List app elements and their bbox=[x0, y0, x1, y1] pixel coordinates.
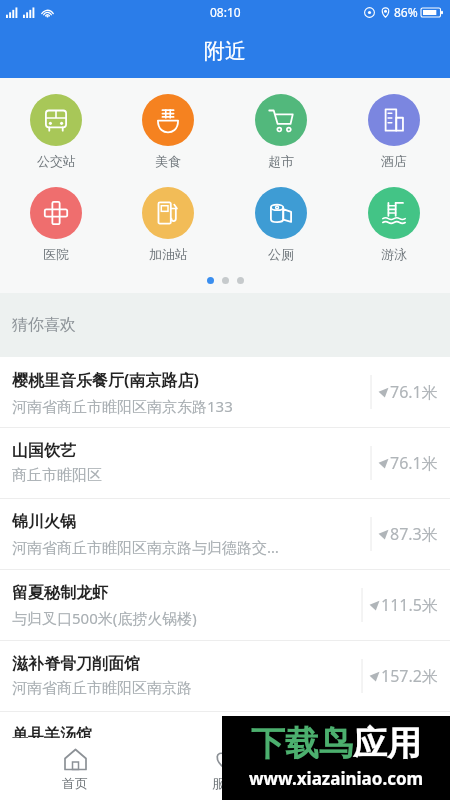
staticText: 157.2米 bbox=[381, 665, 438, 687]
staticText: 美食 bbox=[155, 153, 181, 169]
staticText: 河南省商丘市睢阳区南京路 bbox=[12, 679, 192, 698]
button[interactable]: 超市 bbox=[224, 92, 337, 171]
button[interactable]: 锦川火锅 bbox=[0, 499, 450, 569]
staticText: 酒店 bbox=[381, 153, 407, 169]
staticText: 公交站 bbox=[37, 153, 76, 169]
staticText: 180.0米 bbox=[381, 736, 438, 758]
button[interactable]: 单县羊汤馆 bbox=[0, 712, 450, 782]
staticText: 河南省商丘市睢阳区南京路与归德路交… bbox=[12, 537, 279, 557]
staticText: 河南省商丘市睢阳区南京东路133 bbox=[12, 396, 233, 416]
staticText: 08:10 bbox=[210, 4, 241, 20]
staticText: 锦川火锅 bbox=[12, 512, 76, 532]
button[interactable]: 酒店 bbox=[337, 92, 450, 171]
staticText: 加油站 bbox=[149, 246, 188, 262]
staticText: 与归叉口500米(底捞火锅楼) bbox=[12, 608, 197, 628]
staticText: 首页 bbox=[62, 775, 88, 791]
staticText: 猜你喜欢 bbox=[12, 315, 76, 335]
button[interactable]: 公交站 bbox=[0, 92, 112, 171]
button[interactable]: 医院 bbox=[0, 185, 112, 264]
button[interactable]: 加油站 bbox=[112, 185, 224, 264]
button[interactable]: 游泳 bbox=[337, 185, 450, 264]
button[interactable]: 服务 bbox=[150, 738, 300, 800]
staticText: www.xiazainiao.com bbox=[249, 767, 424, 790]
staticText: 医院 bbox=[43, 246, 69, 262]
button[interactable]: 樱桃里音乐餐厅(南京路店) bbox=[0, 357, 450, 427]
other: 首页 bbox=[63, 747, 88, 772]
button[interactable]: 公厕 bbox=[224, 185, 337, 264]
button[interactable]: 留夏秘制龙虾 bbox=[0, 570, 450, 640]
staticText: 111.5米 bbox=[381, 594, 438, 616]
button[interactable]: 滋补脊骨刀削面馆 bbox=[0, 641, 450, 711]
staticText: 留夏秘制龙虾 bbox=[12, 583, 108, 603]
staticText: 公厕 bbox=[268, 246, 294, 262]
button[interactable]: 美食 bbox=[112, 92, 224, 171]
button[interactable]: 山国饮艺 bbox=[0, 428, 450, 498]
staticText: 滋补脊骨刀削面馆 bbox=[12, 654, 140, 674]
staticText: 河南省商丘市睢阳区睢阳… bbox=[12, 750, 189, 770]
staticText: 服务 bbox=[212, 775, 238, 791]
staticText: 87.3米 bbox=[390, 523, 438, 545]
staticText: 下载鸟 bbox=[251, 722, 353, 765]
staticText: 86% bbox=[394, 4, 418, 20]
other: 服务 bbox=[213, 747, 238, 772]
staticText: 樱桃里音乐餐厅(南京路店) bbox=[12, 369, 199, 391]
staticText: 76.1米 bbox=[390, 381, 438, 403]
staticText: 超市 bbox=[268, 153, 294, 169]
staticText: 单县羊汤馆 bbox=[12, 725, 92, 745]
staticText: 附近 bbox=[204, 38, 246, 64]
staticText: 应用 bbox=[353, 722, 421, 765]
staticText: 商丘市睢阳区 bbox=[12, 466, 102, 485]
staticText: 山国饮艺 bbox=[12, 441, 76, 461]
staticText: 游泳 bbox=[381, 246, 407, 262]
button[interactable]: 首页 bbox=[0, 738, 150, 800]
staticText: 76.1米 bbox=[390, 452, 438, 474]
